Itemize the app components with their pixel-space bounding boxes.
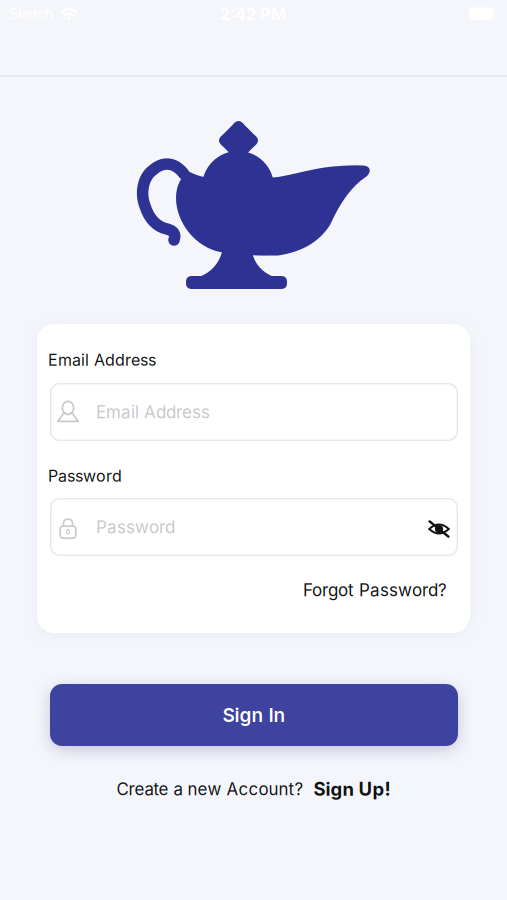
staticText: Forgot Password? — [303, 580, 447, 600]
staticText: Sign Up! — [313, 778, 390, 800]
button[interactable]: Sign Up! — [313, 778, 390, 800]
staticText: Sign In — [222, 704, 285, 726]
staticText: Password — [48, 467, 122, 485]
staticText: Password — [96, 517, 175, 537]
staticText: Create a new Account? — [116, 779, 303, 799]
button[interactable]: Forgot Password? — [303, 580, 447, 600]
staticText: 2:42 PM — [220, 4, 286, 24]
staticText: Email Address — [96, 402, 210, 422]
button[interactable]: Show password — [419, 509, 459, 549]
button[interactable]: Sign In — [50, 684, 458, 746]
button[interactable]: Email Address — [50, 383, 458, 441]
staticText: Email Address — [48, 351, 156, 369]
button[interactable]: Password — [50, 498, 458, 556]
staticText: Sketch — [9, 6, 53, 22]
